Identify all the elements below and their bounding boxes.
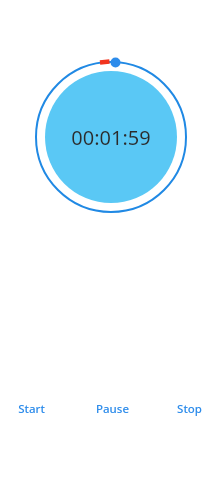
staticText: Pause (96, 401, 129, 417)
button[interactable]: Start (13, 397, 50, 421)
staticText: 00:01:59 (71, 124, 151, 151)
staticText: Stop (177, 401, 202, 417)
staticText: Start (18, 401, 45, 417)
button[interactable]: 00:01:59 (34, 60, 188, 214)
button[interactable]: Pause (91, 397, 134, 421)
button[interactable]: Stop (172, 397, 207, 421)
